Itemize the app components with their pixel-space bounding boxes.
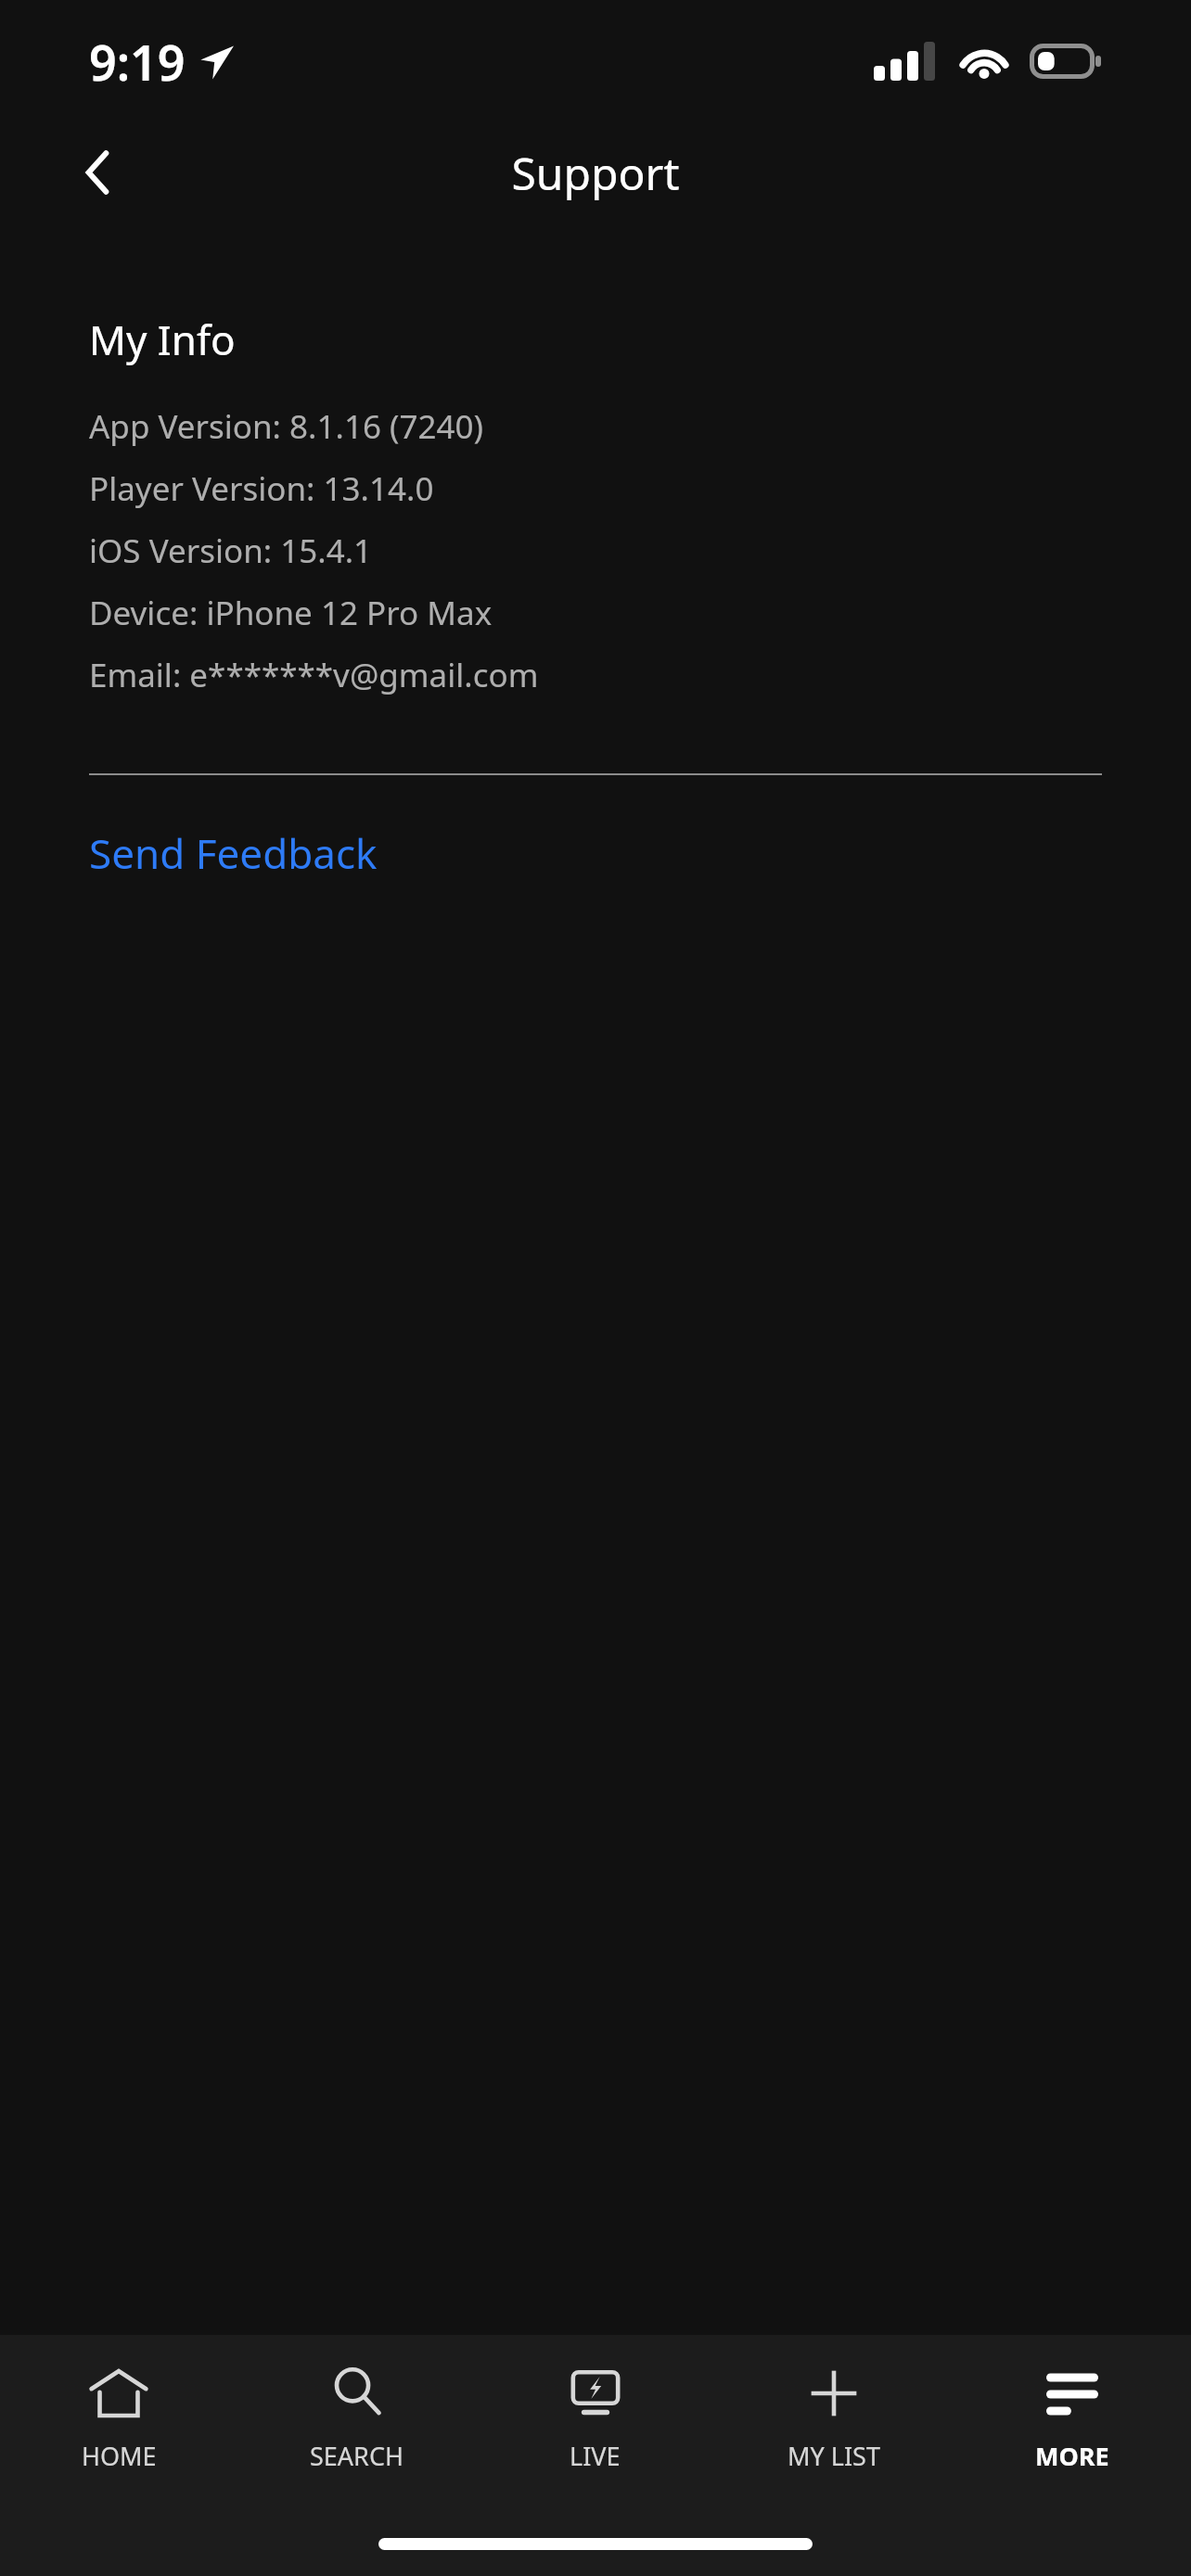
button[interactable]: LIVE: [476, 2335, 714, 2500]
staticText: Device: iPhone 12 Pro Max: [89, 591, 493, 635]
staticText: Send Feedback: [89, 825, 378, 881]
staticText: MY LIST: [788, 2439, 880, 2473]
staticText: Player Version: 13.14.0: [89, 466, 434, 511]
button[interactable]: MORE: [953, 2335, 1191, 2500]
button[interactable]: HOME: [0, 2335, 237, 2500]
staticText: Email: e*******v@gmail.com: [89, 653, 539, 697]
button[interactable]: SEARCH: [237, 2335, 476, 2500]
staticText: Support: [511, 143, 680, 203]
staticText: LIVE: [570, 2439, 621, 2473]
button[interactable]: Send Feedback: [89, 825, 378, 881]
button[interactable]: Back: [59, 134, 137, 211]
staticText: 9:19: [89, 29, 186, 95]
staticText: HOME: [82, 2439, 157, 2473]
staticText: SEARCH: [310, 2439, 403, 2473]
staticText: App Version: 8.1.16 (7240): [89, 404, 484, 449]
staticText: MORE: [1035, 2439, 1109, 2473]
staticText: iOS Version: 15.4.1: [89, 529, 373, 573]
button[interactable]: MY LIST: [714, 2335, 953, 2500]
staticText: My Info: [89, 312, 236, 367]
